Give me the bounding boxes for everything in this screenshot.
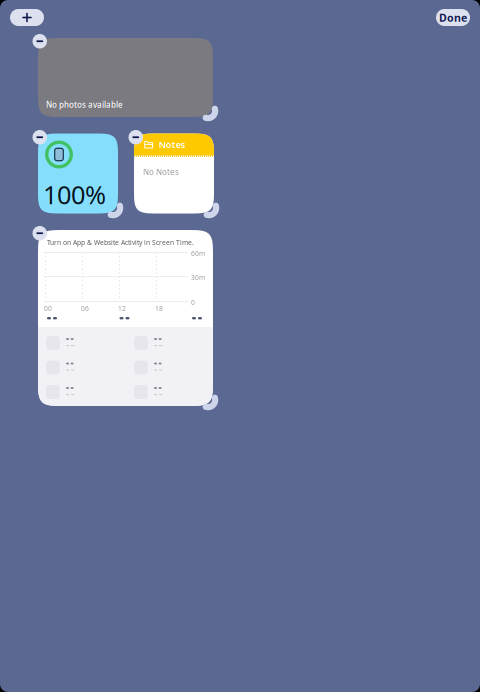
staticText: 18 (155, 304, 163, 313)
staticText: 0 (191, 298, 195, 307)
staticText: 06 (81, 304, 89, 313)
staticText: Notes (158, 138, 185, 151)
staticText: Turn on App & Website Activity in Screen… (47, 238, 194, 247)
staticText: 00 (44, 304, 52, 313)
staticText: Done (439, 10, 467, 25)
button[interactable]: Remove widget (128, 130, 143, 144)
staticText: 12 (118, 304, 126, 313)
staticText: 60m (191, 249, 205, 258)
button[interactable]: Remove widget (32, 226, 47, 240)
button[interactable]: Add widget (10, 9, 44, 26)
staticText: 100% (43, 177, 106, 211)
staticText: 30m (191, 273, 205, 282)
button[interactable]: No photos available (38, 38, 213, 117)
button[interactable]: Done (436, 9, 470, 26)
staticText: No photos available (46, 99, 123, 110)
button[interactable]: Remove widget (32, 130, 47, 144)
button[interactable]: Notes (134, 133, 214, 213)
button[interactable]: 100% (38, 133, 118, 213)
button[interactable]: Turn on App & Website Activity in Screen… (38, 230, 213, 406)
staticText: No Notes (143, 166, 179, 177)
button[interactable]: Remove widget (32, 34, 47, 48)
